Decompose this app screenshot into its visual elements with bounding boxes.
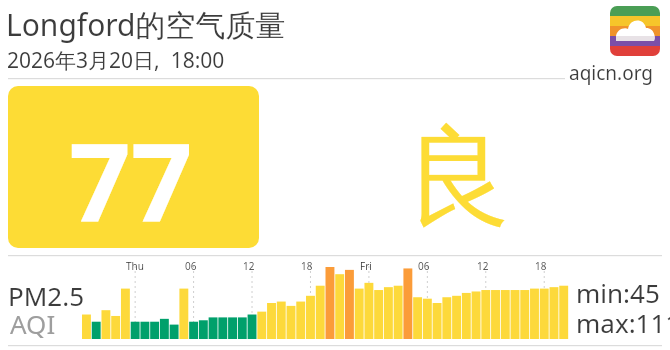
staticText: aqicn.org (569, 60, 654, 86)
staticText: PM2.5 (8, 278, 85, 313)
staticText: 18 (301, 259, 313, 273)
staticText: 12 (477, 259, 489, 273)
staticText: max:111 (576, 305, 670, 340)
staticText: AQI (10, 306, 56, 341)
staticText: 77 (69, 106, 193, 253)
staticText: Longford的空气质量 (6, 4, 286, 45)
staticText: 良 (404, 110, 512, 246)
staticText: Fri (360, 259, 372, 273)
staticText: Thu (126, 259, 144, 273)
staticText: 12 (243, 259, 255, 273)
staticText: 06 (418, 259, 430, 273)
button[interactable]: aqicn.org logo (610, 6, 660, 56)
staticText: 06 (185, 259, 197, 273)
button[interactable] (8, 86, 259, 248)
staticText: 18 (535, 259, 547, 273)
staticText: min:45 (576, 275, 660, 310)
staticText: 2026年3月20日, 18:00 (7, 46, 225, 75)
button[interactable] (0, 0, 670, 350)
